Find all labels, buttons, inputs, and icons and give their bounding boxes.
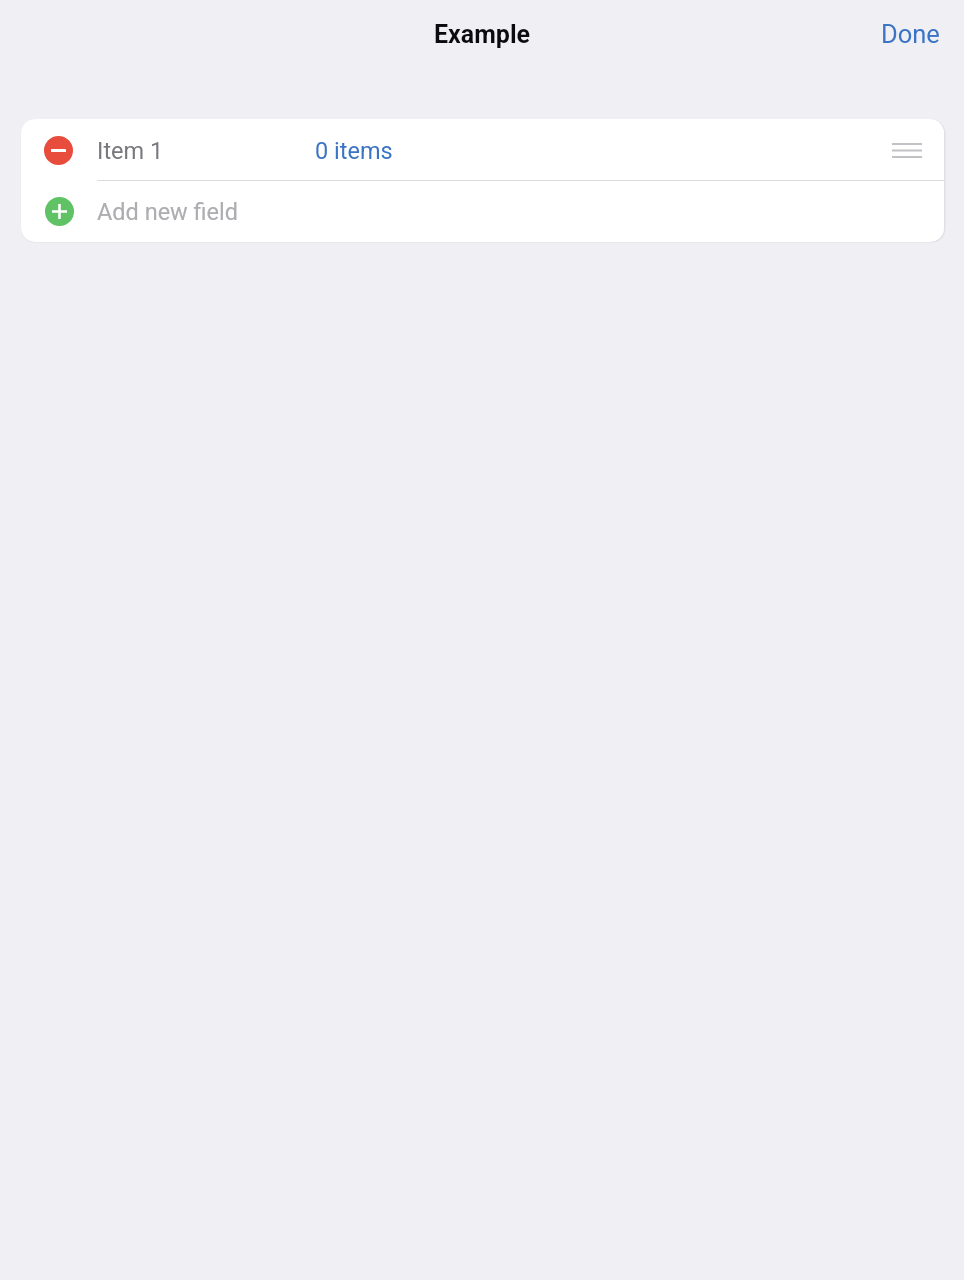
button[interactable]: Add new field xyxy=(21,181,944,242)
staticText: Add new field xyxy=(97,198,239,226)
button[interactable]: Remove item xyxy=(21,119,944,180)
button[interactable]: Reorder item xyxy=(885,128,929,172)
staticText: Item 1 xyxy=(97,137,164,165)
staticText: 0 items xyxy=(315,137,393,165)
button[interactable]: Remove item xyxy=(44,136,73,165)
staticText: Example xyxy=(434,20,530,49)
staticText: Done xyxy=(881,19,940,49)
button[interactable]: Done xyxy=(855,7,964,61)
button[interactable]: Add new field xyxy=(45,197,74,226)
